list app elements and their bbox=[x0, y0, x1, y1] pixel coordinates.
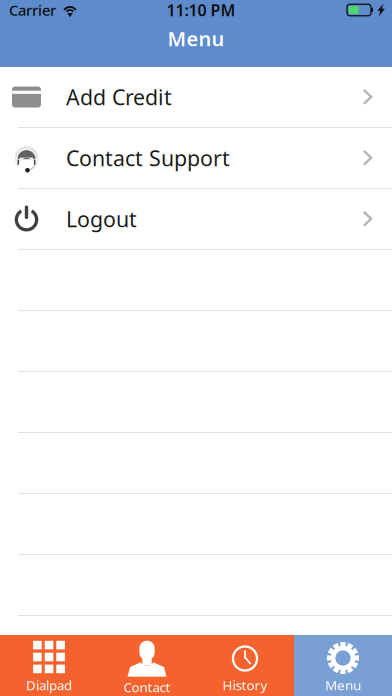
staticText: Carrier bbox=[9, 0, 56, 20]
button[interactable]: Logout bbox=[0, 189, 392, 250]
staticText: Add Credit bbox=[66, 83, 172, 111]
button[interactable]: History bbox=[196, 635, 294, 696]
staticText: History bbox=[222, 676, 267, 694]
button[interactable]: Menu bbox=[294, 635, 392, 696]
staticText: Contact bbox=[123, 678, 170, 696]
staticText: Menu bbox=[167, 25, 224, 52]
button[interactable]: Add Credit bbox=[0, 67, 392, 128]
staticText: Contact Support bbox=[66, 144, 230, 172]
button[interactable]: Dialpad bbox=[0, 635, 98, 696]
button[interactable]: Contact Support bbox=[0, 128, 392, 189]
staticText: Menu bbox=[325, 676, 361, 694]
button[interactable]: Contact bbox=[98, 635, 196, 696]
staticText: Dialpad bbox=[26, 676, 72, 694]
staticText: Logout bbox=[66, 205, 137, 233]
staticText: 11:10 PM bbox=[166, 0, 235, 21]
